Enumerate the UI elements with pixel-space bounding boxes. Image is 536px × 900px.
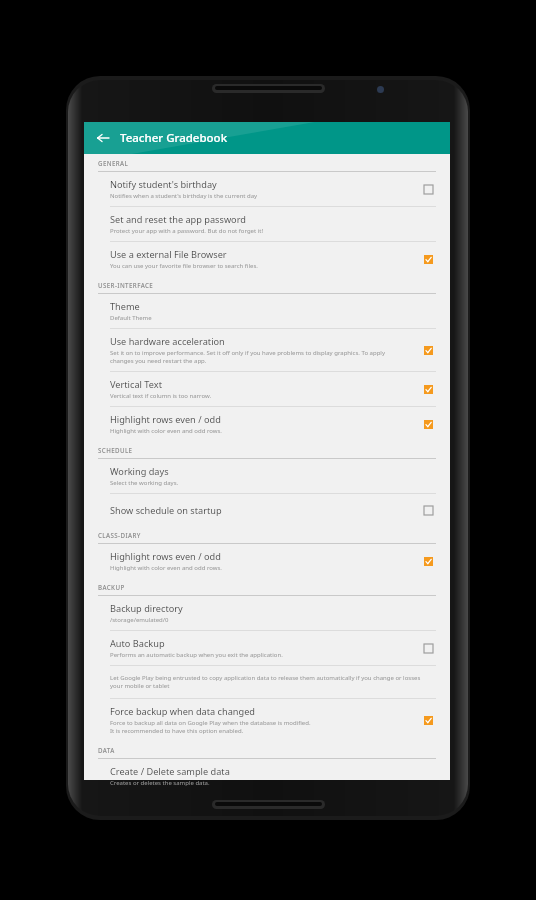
button[interactable]: Notify student's birthday (84, 172, 450, 206)
button[interactable]: Checked (418, 710, 438, 730)
button[interactable]: Working days (84, 459, 450, 493)
staticText: BACKUP (98, 583, 125, 591)
button[interactable]: Show schedule on startup (84, 494, 450, 526)
staticText: Highlight with color even and odd rows. (110, 564, 222, 572)
staticText: Create / Delete sample data (110, 765, 230, 778)
staticText: Teacher Gradebook (120, 130, 228, 146)
staticText: Vertical text if column is too narrow. (110, 392, 212, 400)
staticText: Vertical Text (110, 378, 162, 391)
staticText: Working days (110, 465, 169, 478)
staticText: DATA (98, 746, 115, 754)
button[interactable]: Backup directory (84, 596, 450, 630)
staticText: Highlight with color even and odd rows. (110, 427, 222, 435)
button[interactable]: Force backup when data changed (84, 699, 450, 741)
staticText: Set and reset the app password (110, 213, 246, 226)
staticText: SCHEDULE (98, 446, 133, 454)
staticText: Use a external File Browser (110, 248, 227, 261)
button[interactable]: Checked (418, 379, 438, 399)
staticText: Performs an automatic backup when you ex… (110, 651, 283, 659)
staticText: Force backup when data changed (110, 705, 255, 718)
button[interactable]: Theme (84, 294, 450, 328)
staticText: Notifies when a student's birthday is th… (110, 192, 258, 200)
staticText: Creates or deletes the sample data. (110, 779, 210, 787)
button[interactable]: Highlight rows even / odd (84, 544, 450, 578)
button[interactable]: Highlight rows even / odd (84, 407, 450, 441)
button[interactable]: Create / Delete sample data (84, 759, 450, 793)
staticText: Theme (110, 300, 140, 313)
button[interactable]: Checked (418, 414, 438, 434)
button[interactable]: Back (92, 127, 114, 149)
staticText: Notify student's birthday (110, 178, 217, 191)
staticText: Backup directory (110, 602, 183, 615)
button[interactable]: Checked (418, 249, 438, 269)
staticText: Let Google Play being entrusted to copy … (110, 674, 434, 690)
staticText: Protect your app with a password. But do… (110, 227, 264, 235)
staticText: Set it on to improve performance. Set it… (110, 349, 410, 365)
staticText: Default Theme (110, 314, 152, 322)
staticText: CLASS-DIARY (98, 531, 141, 539)
button[interactable]: Unchecked (418, 500, 438, 520)
staticText: Show schedule on startup (110, 504, 222, 517)
button[interactable]: Set and reset the app password (84, 207, 450, 241)
staticText: USER-INTERFACE (98, 281, 154, 289)
staticText: /storage/emulated/0 (110, 616, 169, 624)
staticText: Use hardware acceleration (110, 335, 225, 348)
button[interactable]: Unchecked (418, 179, 438, 199)
staticText: You can use your favorite file browser t… (110, 262, 258, 270)
staticText: Highlight rows even / odd (110, 413, 221, 426)
staticText: Force to backup all data on Google Play … (110, 719, 311, 735)
staticText: GENERAL (98, 159, 129, 167)
staticText: Auto Backup (110, 637, 165, 650)
button[interactable]: Checked (418, 340, 438, 360)
button[interactable]: Vertical Text (84, 372, 450, 406)
button[interactable]: Auto Backup (84, 631, 450, 665)
button[interactable]: Use a external File Browser (84, 242, 450, 276)
button[interactable]: Checked (418, 551, 438, 571)
staticText: Highlight rows even / odd (110, 550, 221, 563)
button[interactable]: Use hardware acceleration (84, 329, 450, 371)
staticText: Select the working days. (110, 479, 179, 487)
button[interactable]: Unchecked (418, 638, 438, 658)
